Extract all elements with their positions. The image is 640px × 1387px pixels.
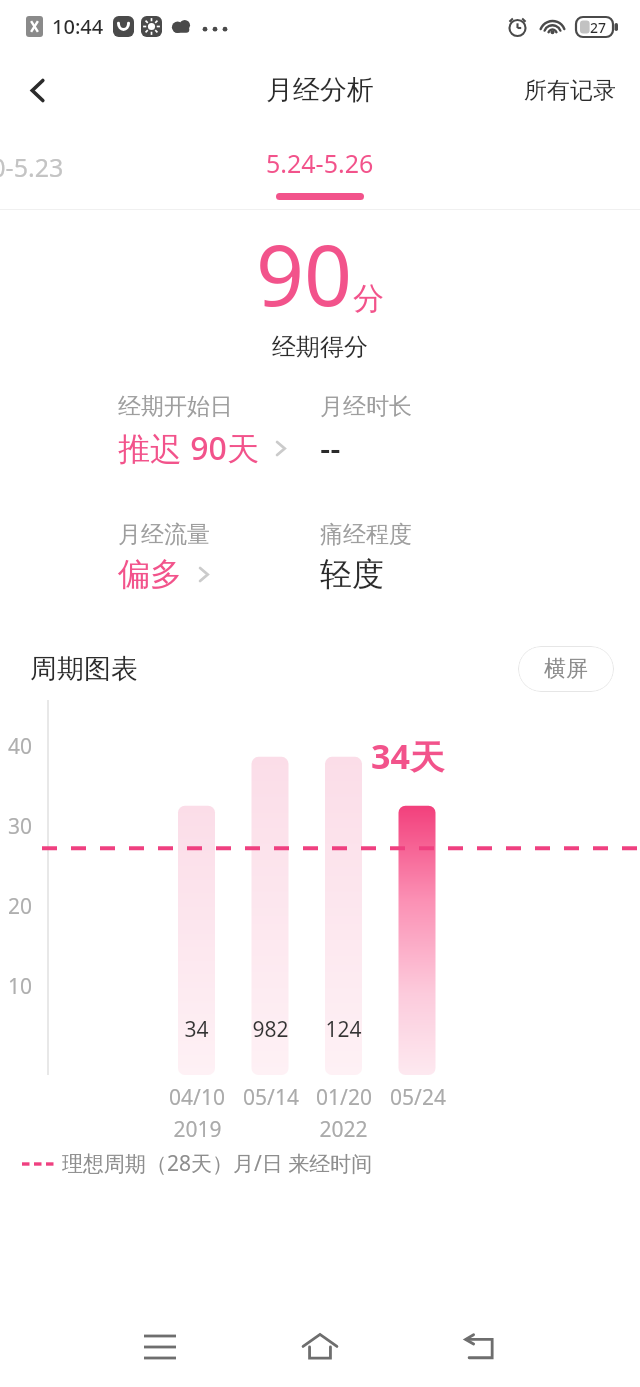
staticText: 周期图表	[30, 652, 138, 686]
staticText: 20	[8, 892, 33, 921]
staticText: 10	[8, 972, 33, 1001]
button[interactable]: 5.24-5.26	[266, 146, 374, 200]
staticText: 理想周期（28天）月/日 来经时间	[62, 1149, 373, 1178]
staticText: 横屏	[544, 655, 588, 683]
staticText: 34	[184, 1015, 209, 1044]
button[interactable]: 5.20-5.23	[0, 146, 68, 188]
staticText: 月经时长	[320, 392, 412, 421]
staticText: 5.24-5.26	[266, 146, 374, 180]
staticText: 27	[590, 18, 607, 37]
staticText: 经期开始日	[118, 392, 233, 421]
button[interactable]: 月经流量	[118, 520, 213, 594]
staticText: 痛经程度	[320, 520, 412, 549]
button[interactable]: 所有记录	[518, 70, 622, 111]
staticText: 04/10	[169, 1083, 225, 1112]
button[interactable]: 经期开始日	[118, 392, 290, 470]
staticText: 30	[8, 812, 33, 841]
button[interactable]: Back	[445, 1312, 515, 1382]
staticText: 分	[353, 279, 384, 318]
button[interactable]: 横屏	[518, 646, 614, 692]
staticText: 月经流量	[118, 520, 210, 549]
staticText: 所有记录	[524, 76, 616, 105]
staticText: 偏多	[118, 554, 182, 594]
staticText: 01/20	[316, 1083, 372, 1112]
staticText: 05/14	[243, 1083, 299, 1112]
button[interactable]: Home	[285, 1312, 355, 1382]
staticText: 05/24	[390, 1083, 446, 1112]
button[interactable]: Back	[8, 60, 68, 120]
staticText: 10:44	[52, 13, 104, 40]
staticText: 40	[8, 732, 33, 761]
staticText: 5.20-5.23	[0, 150, 64, 184]
staticText: 982	[252, 1015, 289, 1044]
staticText: --	[320, 426, 341, 470]
staticText: 2019	[173, 1115, 222, 1144]
staticText: 124	[325, 1015, 362, 1044]
staticText: 90	[256, 216, 353, 330]
button[interactable]: Recent apps	[125, 1312, 195, 1382]
staticText: 推迟 90天	[118, 426, 259, 470]
staticText: 34天	[371, 733, 444, 779]
staticText: 轻度	[320, 554, 384, 594]
staticText: 月经分析	[266, 73, 374, 107]
staticText: 经期得分	[272, 332, 368, 362]
staticText: 2022	[319, 1115, 368, 1144]
